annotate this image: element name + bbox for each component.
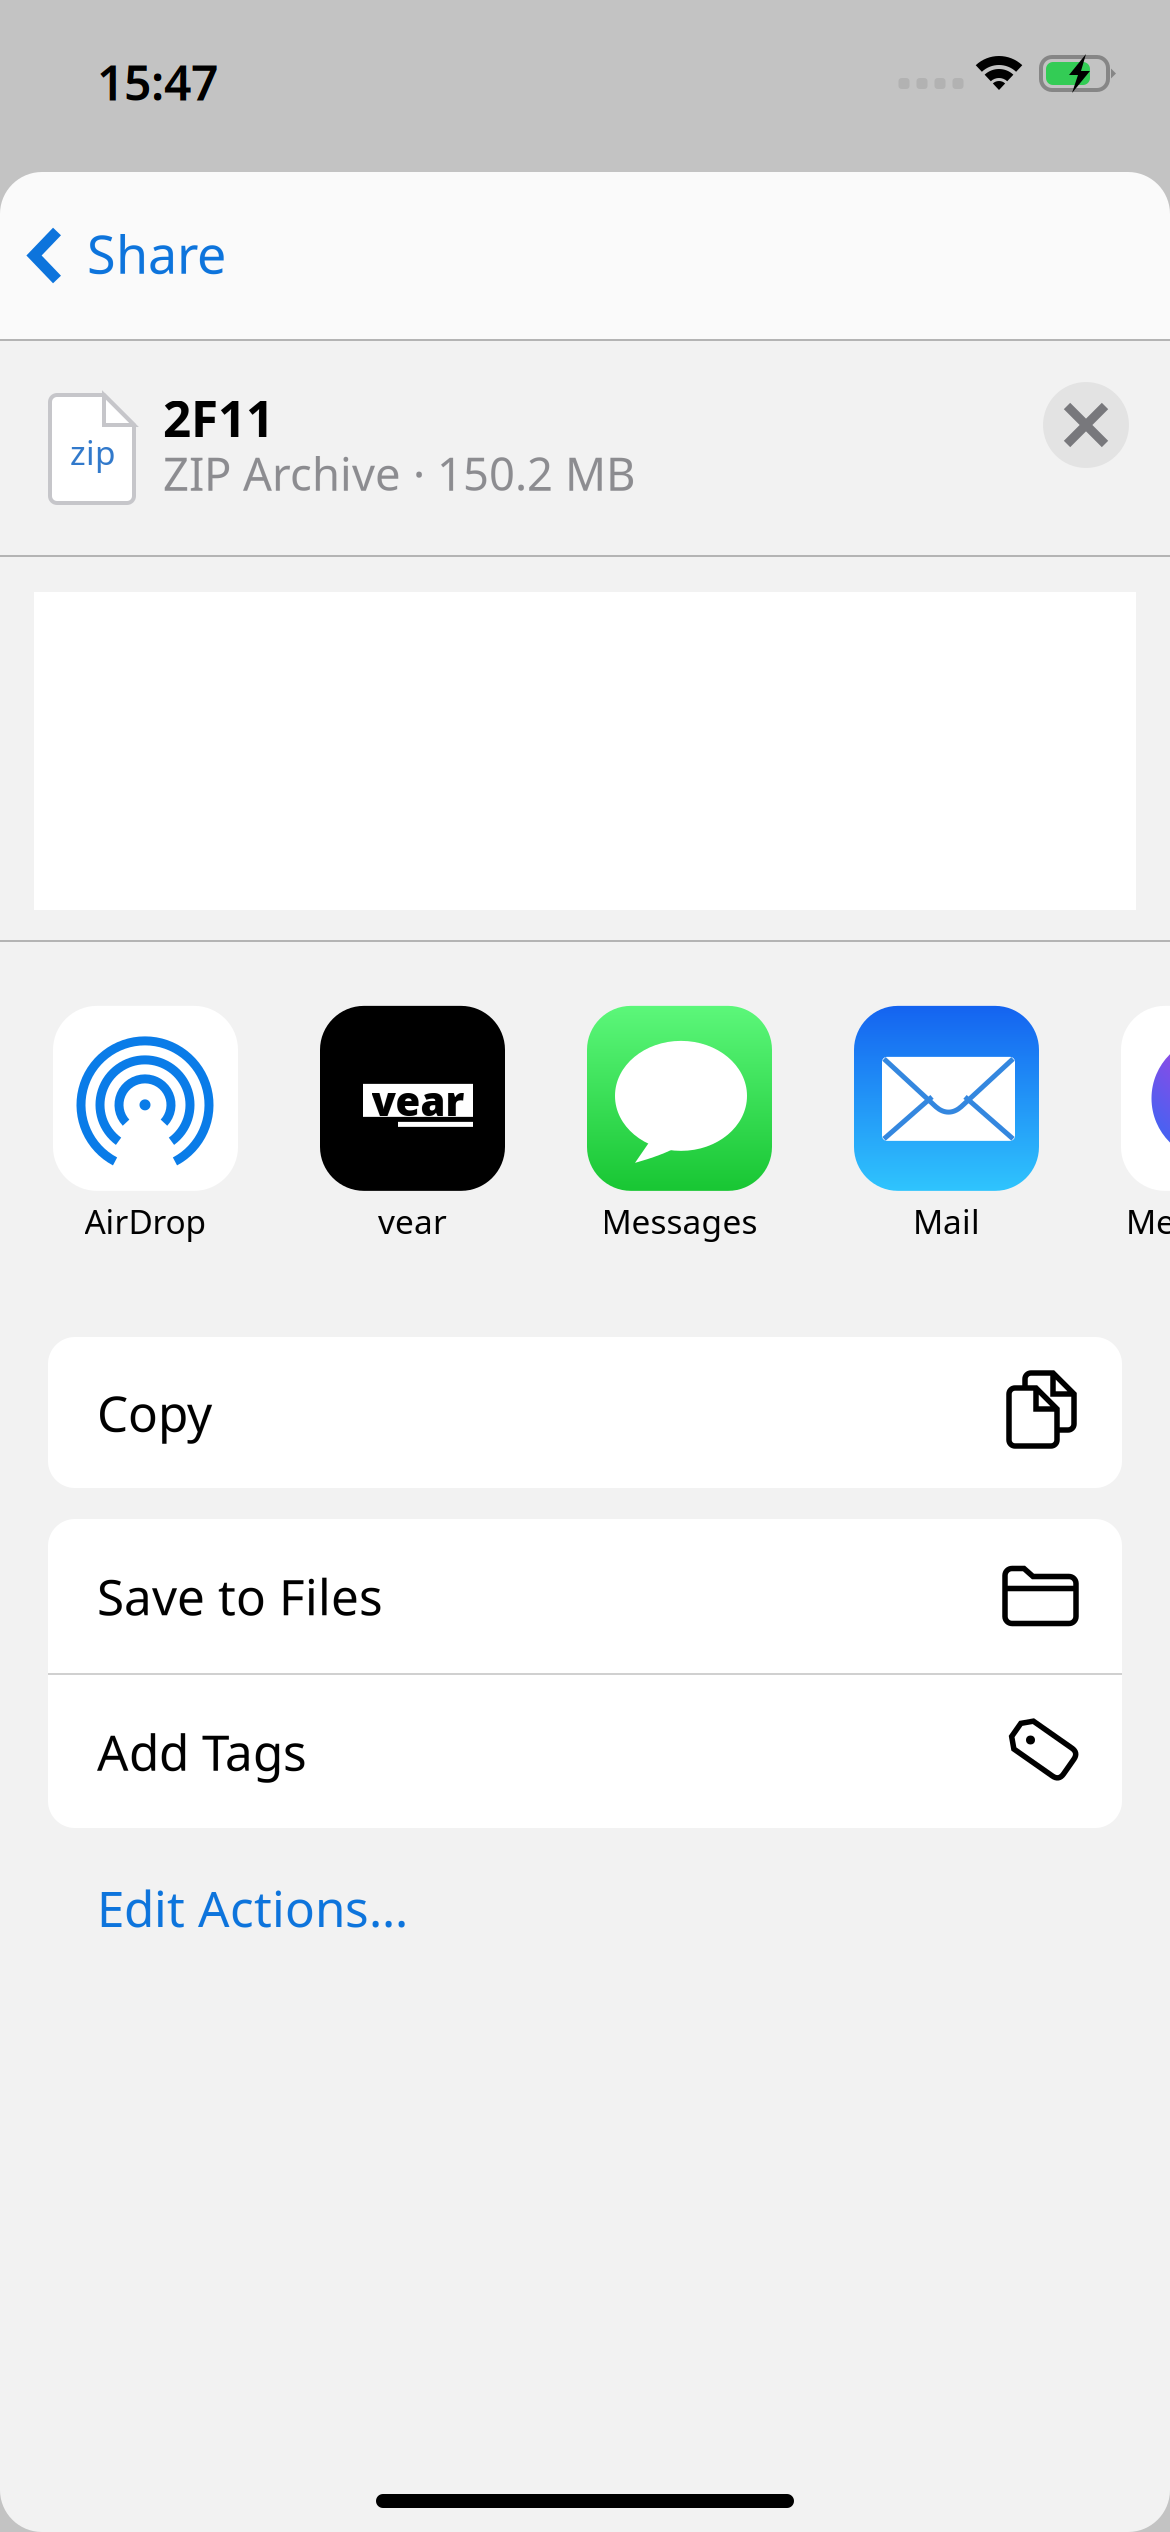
staticText: Add Tags [97, 1719, 307, 1784]
staticText: zip [70, 430, 116, 474]
button[interactable]: AirDrop [53, 1006, 238, 1243]
staticText: Copy [97, 1380, 212, 1445]
staticText: AirDrop [84, 1199, 206, 1243]
staticText: vear [371, 1074, 464, 1127]
button[interactable]: Add Tags [48, 1675, 1122, 1828]
button[interactable]: Messenger [1121, 1006, 1170, 1243]
button[interactable]: Remove attachment [1031, 370, 1141, 480]
staticText: 2F11 [163, 385, 274, 450]
staticText: Messages [601, 1199, 757, 1243]
button[interactable]: vear [320, 1006, 505, 1243]
staticText: Mail [913, 1199, 980, 1243]
staticText: Save to Files [97, 1563, 383, 1629]
staticText: vear [378, 1199, 447, 1243]
button[interactable]: Mail [854, 1006, 1039, 1243]
button[interactable]: Copy [48, 1337, 1122, 1488]
staticText: Messenger [1126, 1199, 1170, 1243]
staticText: Edit Actions... [97, 1875, 408, 1940]
staticText: Share [87, 219, 226, 288]
staticText: ZIP Archive · 150.2 MB [163, 443, 635, 503]
button[interactable]: Edit Actions... [0, 1828, 1170, 1974]
button[interactable]: Share [0, 197, 256, 314]
button[interactable]: Messages [587, 1006, 772, 1243]
button[interactable]: Save to Files [48, 1519, 1122, 1673]
staticText: 15:47 [97, 50, 218, 114]
